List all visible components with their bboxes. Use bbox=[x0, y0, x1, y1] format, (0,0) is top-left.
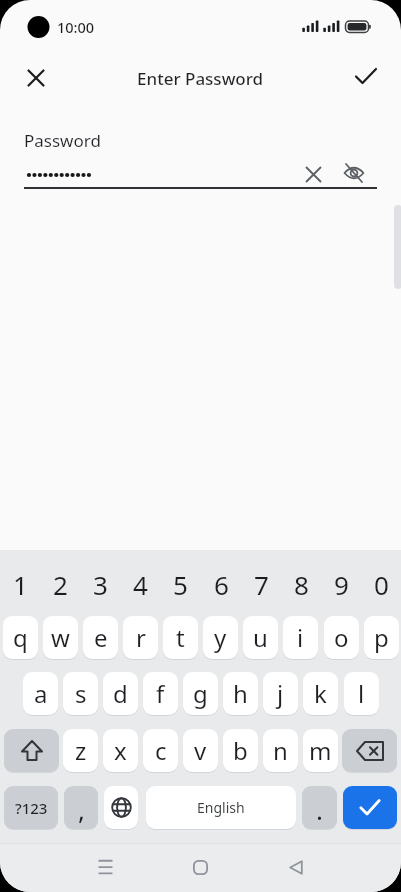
button[interactable]: . bbox=[302, 786, 337, 829]
staticText: d bbox=[113, 677, 128, 710]
button[interactable]: , bbox=[64, 786, 98, 829]
staticText: y bbox=[214, 621, 227, 654]
staticText: Enter Password bbox=[137, 67, 264, 90]
button[interactable]: r bbox=[123, 616, 158, 659]
button[interactable]: o bbox=[324, 616, 359, 659]
staticText: c bbox=[155, 734, 167, 767]
staticText: 10:00 bbox=[57, 17, 95, 37]
button[interactable] bbox=[89, 851, 121, 883]
staticText: l bbox=[358, 677, 365, 710]
staticText: z bbox=[75, 734, 87, 767]
staticText: v bbox=[194, 734, 207, 767]
staticText: o bbox=[334, 621, 349, 654]
button[interactable]: t bbox=[163, 616, 198, 659]
staticText: 8 bbox=[294, 567, 309, 602]
button[interactable]: 2 bbox=[40, 553, 80, 615]
staticText: 7 bbox=[254, 567, 269, 602]
button[interactable]: m bbox=[303, 729, 338, 772]
button[interactable] bbox=[342, 729, 397, 772]
staticText: s bbox=[75, 677, 87, 710]
staticText: Password bbox=[24, 129, 101, 152]
button[interactable] bbox=[280, 851, 312, 883]
button[interactable]: c bbox=[143, 729, 178, 772]
staticText: a bbox=[34, 677, 48, 710]
button[interactable]: p bbox=[364, 616, 399, 659]
staticText: 3 bbox=[93, 567, 108, 602]
staticText: 4 bbox=[133, 567, 148, 602]
staticText: x bbox=[114, 734, 127, 767]
button[interactable]: e bbox=[83, 616, 118, 659]
button[interactable]: 1 bbox=[0, 553, 40, 615]
staticText: u bbox=[253, 621, 268, 654]
button[interactable] bbox=[16, 58, 56, 98]
button[interactable]: q bbox=[3, 616, 38, 659]
button[interactable]: s bbox=[63, 672, 98, 715]
staticText: n bbox=[273, 734, 288, 767]
button[interactable]: x bbox=[103, 729, 138, 772]
staticText: 1 bbox=[13, 567, 28, 602]
button[interactable]: f bbox=[143, 672, 178, 715]
staticText: f bbox=[156, 677, 165, 710]
staticText: 9 bbox=[334, 567, 349, 602]
button[interactable]: i bbox=[283, 616, 318, 659]
staticText: m bbox=[309, 734, 332, 767]
staticText: 2 bbox=[53, 567, 68, 602]
button[interactable] bbox=[4, 729, 59, 772]
staticText: 6 bbox=[214, 567, 229, 602]
button[interactable] bbox=[343, 786, 397, 829]
button[interactable]: u bbox=[243, 616, 278, 659]
staticText: g bbox=[193, 677, 208, 710]
button[interactable]: 3 bbox=[80, 553, 120, 615]
button[interactable]: 4 bbox=[120, 553, 160, 615]
staticText: k bbox=[314, 677, 327, 710]
button[interactable] bbox=[346, 58, 386, 98]
staticText: ?123 bbox=[15, 798, 48, 818]
staticText: i bbox=[297, 621, 304, 654]
staticText: b bbox=[233, 734, 248, 767]
staticText: e bbox=[94, 621, 108, 654]
button[interactable]: 6 bbox=[201, 553, 241, 615]
button[interactable]: 5 bbox=[160, 553, 200, 615]
button[interactable]: k bbox=[303, 672, 338, 715]
button[interactable] bbox=[339, 158, 369, 188]
button[interactable]: b bbox=[223, 729, 258, 772]
staticText: j bbox=[277, 677, 284, 710]
staticText: q bbox=[13, 621, 28, 654]
button[interactable]: w bbox=[43, 616, 78, 659]
button[interactable]: English bbox=[146, 786, 296, 829]
button[interactable]: n bbox=[263, 729, 298, 772]
button[interactable]: a bbox=[23, 672, 58, 715]
button[interactable]: j bbox=[263, 672, 298, 715]
staticText: w bbox=[51, 621, 70, 654]
button[interactable]: ?123 bbox=[4, 786, 58, 829]
staticText: 5 bbox=[173, 567, 188, 602]
button[interactable]: l bbox=[344, 672, 379, 715]
button[interactable]: v bbox=[183, 729, 218, 772]
button[interactable]: 7 bbox=[241, 553, 281, 615]
staticText: . bbox=[316, 792, 323, 827]
button[interactable]: z bbox=[63, 729, 98, 772]
staticText: , bbox=[78, 792, 85, 827]
staticText: h bbox=[233, 677, 248, 710]
button[interactable]: h bbox=[223, 672, 258, 715]
staticText: English bbox=[197, 798, 245, 817]
button[interactable] bbox=[104, 786, 138, 829]
button[interactable]: 0 bbox=[361, 553, 401, 615]
button[interactable] bbox=[298, 159, 328, 189]
button[interactable] bbox=[184, 851, 216, 883]
button[interactable]: 9 bbox=[321, 553, 361, 615]
staticText: r bbox=[136, 621, 146, 654]
staticText: 0 bbox=[374, 567, 389, 602]
button[interactable]: 8 bbox=[281, 553, 321, 615]
staticText: t bbox=[176, 621, 185, 654]
button[interactable]: y bbox=[203, 616, 238, 659]
button[interactable]: d bbox=[103, 672, 138, 715]
staticText: p bbox=[374, 621, 389, 654]
button[interactable]: g bbox=[183, 672, 218, 715]
